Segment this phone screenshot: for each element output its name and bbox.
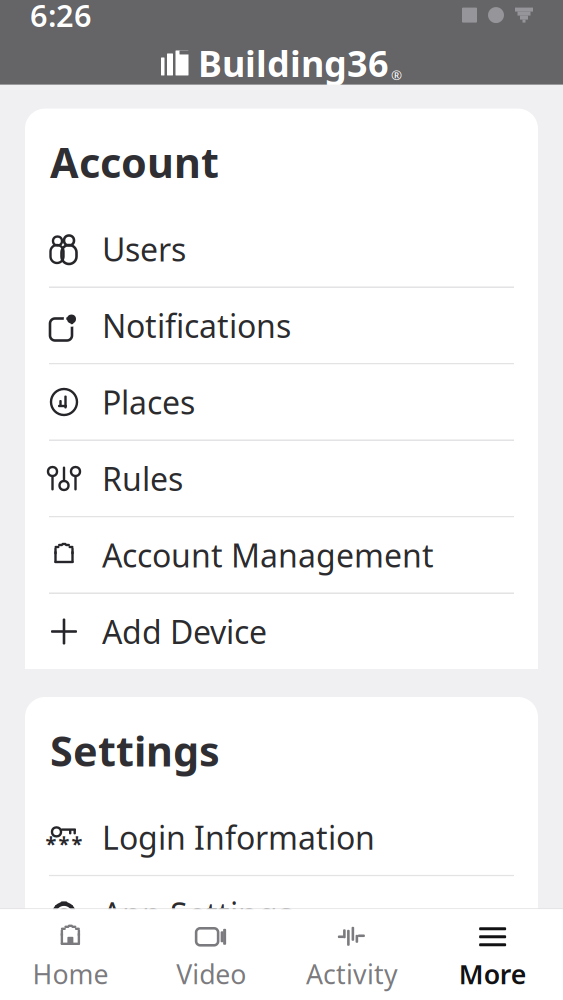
staticText: Places bbox=[102, 381, 195, 423]
button[interactable]: App Settings bbox=[25, 876, 538, 951]
button[interactable]: Rules bbox=[25, 441, 538, 516]
staticText: * bbox=[71, 830, 82, 857]
staticText: App Settings bbox=[102, 893, 293, 935]
staticText: AN ALARM.COM COMPANY bbox=[170, 92, 392, 115]
staticText: Users bbox=[102, 228, 186, 270]
button[interactable]: Account Management bbox=[25, 517, 538, 592]
staticText: * bbox=[45, 830, 56, 857]
button[interactable]: Notifications bbox=[25, 288, 538, 363]
staticText: * bbox=[58, 830, 69, 857]
staticText: Account bbox=[50, 135, 219, 189]
button[interactable]: Home bbox=[0, 909, 141, 1000]
staticText: ® bbox=[391, 66, 402, 84]
staticText: Video bbox=[176, 956, 246, 992]
staticText: Settings bbox=[50, 723, 220, 778]
button[interactable]: Activity bbox=[281, 909, 422, 1000]
staticText: Home bbox=[32, 956, 108, 992]
staticText: 6:26 bbox=[30, 0, 92, 35]
staticText: Login Information bbox=[102, 816, 375, 859]
staticText: More bbox=[459, 956, 527, 992]
button[interactable]: Video bbox=[141, 909, 282, 1000]
button[interactable]: More bbox=[422, 909, 563, 1000]
staticText: Notifications bbox=[102, 304, 291, 347]
button[interactable]: Places bbox=[25, 364, 538, 439]
staticText: Account Management bbox=[102, 534, 434, 576]
button[interactable]: Add Device bbox=[25, 594, 538, 669]
button[interactable]: Users bbox=[25, 211, 538, 286]
staticText: Building36 bbox=[198, 39, 389, 87]
staticText: Rules bbox=[102, 457, 183, 500]
staticText: Add Device bbox=[102, 610, 267, 653]
staticText: Activity bbox=[306, 956, 398, 992]
button[interactable]: * bbox=[25, 800, 538, 875]
